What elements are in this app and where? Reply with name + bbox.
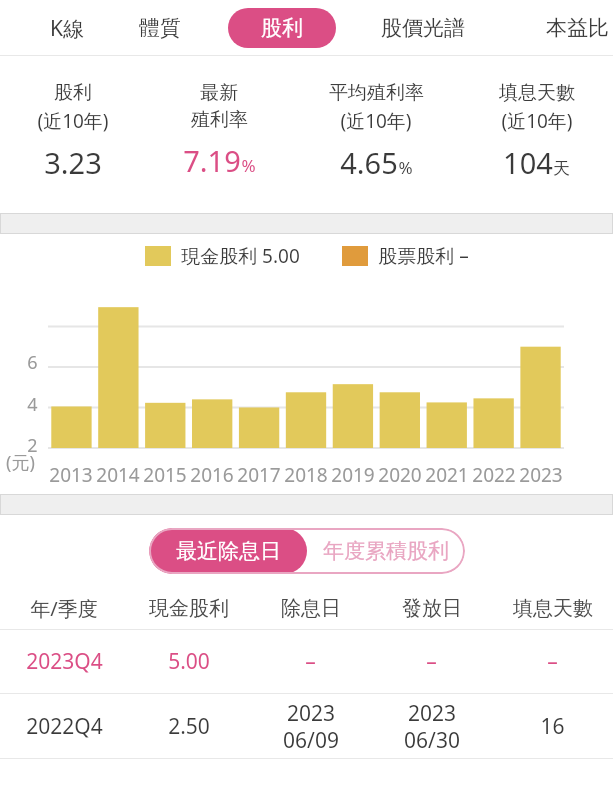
staticText: 現金股利 xyxy=(149,596,229,621)
button[interactable]: 體質 xyxy=(118,9,202,47)
button[interactable]: 2022Q4 xyxy=(0,694,613,758)
staticText: 2018 xyxy=(284,462,328,488)
staticText: 天 xyxy=(553,158,570,179)
staticText: 體質 xyxy=(139,15,181,41)
button[interactable]: K線 xyxy=(26,9,108,47)
staticText: K線 xyxy=(50,14,84,43)
staticText: 2014 xyxy=(96,462,140,488)
button[interactable]: 股價光譜 xyxy=(358,9,488,47)
staticText: (元) xyxy=(6,450,35,475)
staticText: 填息天數 xyxy=(499,81,575,105)
staticText: 104 xyxy=(503,143,553,182)
button[interactable]: 2023Q4 xyxy=(0,630,613,693)
staticText: 最近除息日 xyxy=(176,538,281,564)
staticText: 填息天數 xyxy=(513,596,593,621)
staticText: 平均殖利率 xyxy=(329,81,424,105)
staticText: (近10年) xyxy=(37,108,109,134)
staticText: 2021 xyxy=(425,462,469,488)
staticText: 股利 xyxy=(261,15,303,41)
staticText: 2022Q4 xyxy=(26,712,103,741)
staticText: 現金股利 5.00 xyxy=(181,243,300,269)
staticText: (近10年) xyxy=(501,108,573,134)
staticText: 2.50 xyxy=(168,712,210,741)
staticText: 5.00 xyxy=(168,647,210,676)
staticText: 最新 xyxy=(200,81,238,105)
staticText: 股利 xyxy=(54,81,92,105)
button[interactable]: 本益比 xyxy=(546,9,613,47)
staticText: 2023 06/30 xyxy=(404,699,460,754)
staticText: 股票股利 – xyxy=(378,243,469,269)
staticText: – xyxy=(426,647,437,676)
staticText: 2023 xyxy=(519,462,563,488)
staticText: 2023 06/09 xyxy=(283,699,339,754)
staticText: 2022 xyxy=(472,462,516,488)
staticText: 2 xyxy=(27,433,38,458)
staticText: 2020 xyxy=(378,462,422,488)
staticText: 2023Q4 xyxy=(26,647,103,676)
staticText: 7.19 xyxy=(183,141,241,180)
staticText: – xyxy=(305,647,316,676)
staticText: (近10年) xyxy=(340,108,412,134)
staticText: 6 xyxy=(27,350,38,375)
staticText: 2019 xyxy=(331,462,375,488)
staticText: 4 xyxy=(27,392,38,417)
staticText: % xyxy=(398,156,413,179)
button[interactable]: 股利 xyxy=(228,8,336,48)
staticText: 3.23 xyxy=(44,143,102,182)
staticText: – xyxy=(547,647,558,676)
staticText: 16 xyxy=(540,712,565,741)
staticText: % xyxy=(241,154,256,177)
staticText: 2013 xyxy=(49,462,93,488)
staticText: 4.65 xyxy=(340,143,398,182)
button[interactable]: 年度累積股利 xyxy=(307,528,465,574)
staticText: 年/季度 xyxy=(30,595,98,622)
staticText: 殖利率 xyxy=(191,108,248,132)
staticText: 發放日 xyxy=(402,596,462,621)
staticText: 2015 xyxy=(143,462,187,488)
button[interactable]: 最近除息日 xyxy=(149,528,307,574)
staticText: 2016 xyxy=(190,462,234,488)
staticText: 股價光譜 xyxy=(381,15,465,41)
staticText: 除息日 xyxy=(281,596,341,621)
staticText: 本益比 xyxy=(546,15,609,41)
staticText: 2017 xyxy=(237,462,281,488)
staticText: 年度累積股利 xyxy=(323,538,449,564)
